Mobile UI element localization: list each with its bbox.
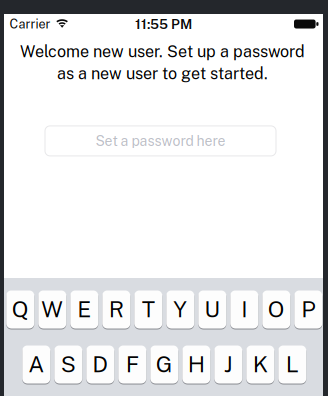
button[interactable]: Q bbox=[6, 290, 34, 329]
staticText: Set a password here bbox=[95, 133, 225, 149]
staticText: E bbox=[77, 296, 91, 322]
staticText: 11:55 PM bbox=[135, 16, 192, 32]
staticText: O bbox=[268, 296, 285, 322]
staticText: Carrier bbox=[9, 17, 50, 31]
staticText: A bbox=[28, 351, 44, 377]
staticText: P bbox=[301, 296, 315, 322]
button[interactable]: P bbox=[294, 290, 322, 329]
staticText: G bbox=[156, 351, 173, 377]
button[interactable]: F bbox=[118, 345, 146, 384]
button[interactable]: D bbox=[86, 345, 114, 384]
button[interactable]: R bbox=[102, 290, 130, 329]
staticText: T bbox=[142, 296, 155, 322]
button[interactable]: E bbox=[70, 290, 98, 329]
staticText: L bbox=[286, 351, 299, 377]
staticText: W bbox=[41, 296, 63, 322]
button[interactable]: K bbox=[246, 345, 274, 384]
staticText: Q bbox=[12, 296, 29, 322]
staticText: R bbox=[109, 296, 124, 322]
staticText: D bbox=[92, 351, 108, 377]
staticText: U bbox=[204, 296, 220, 322]
staticText: as a new user to get started. bbox=[57, 64, 268, 83]
staticText: H bbox=[188, 351, 205, 377]
button[interactable]: L bbox=[278, 345, 306, 384]
staticText: Y bbox=[173, 296, 187, 322]
staticText: I bbox=[241, 296, 247, 322]
button[interactable]: T bbox=[134, 290, 162, 329]
button[interactable]: I bbox=[230, 290, 258, 329]
button[interactable]: Set a password here bbox=[45, 126, 276, 156]
button[interactable]: U bbox=[198, 290, 226, 329]
button[interactable]: S bbox=[54, 345, 82, 384]
button[interactable]: W bbox=[38, 290, 66, 329]
button[interactable]: G bbox=[150, 345, 178, 384]
button[interactable]: O bbox=[262, 290, 290, 329]
staticText: F bbox=[126, 351, 139, 377]
staticText: Welcome new user. Set up a password bbox=[20, 42, 305, 61]
button[interactable]: A bbox=[22, 345, 50, 384]
button[interactable]: J bbox=[214, 345, 242, 384]
button[interactable]: Y bbox=[166, 290, 194, 329]
staticText: S bbox=[61, 351, 76, 377]
button[interactable]: H bbox=[182, 345, 210, 384]
staticText: J bbox=[224, 351, 233, 377]
staticText: K bbox=[253, 351, 268, 377]
